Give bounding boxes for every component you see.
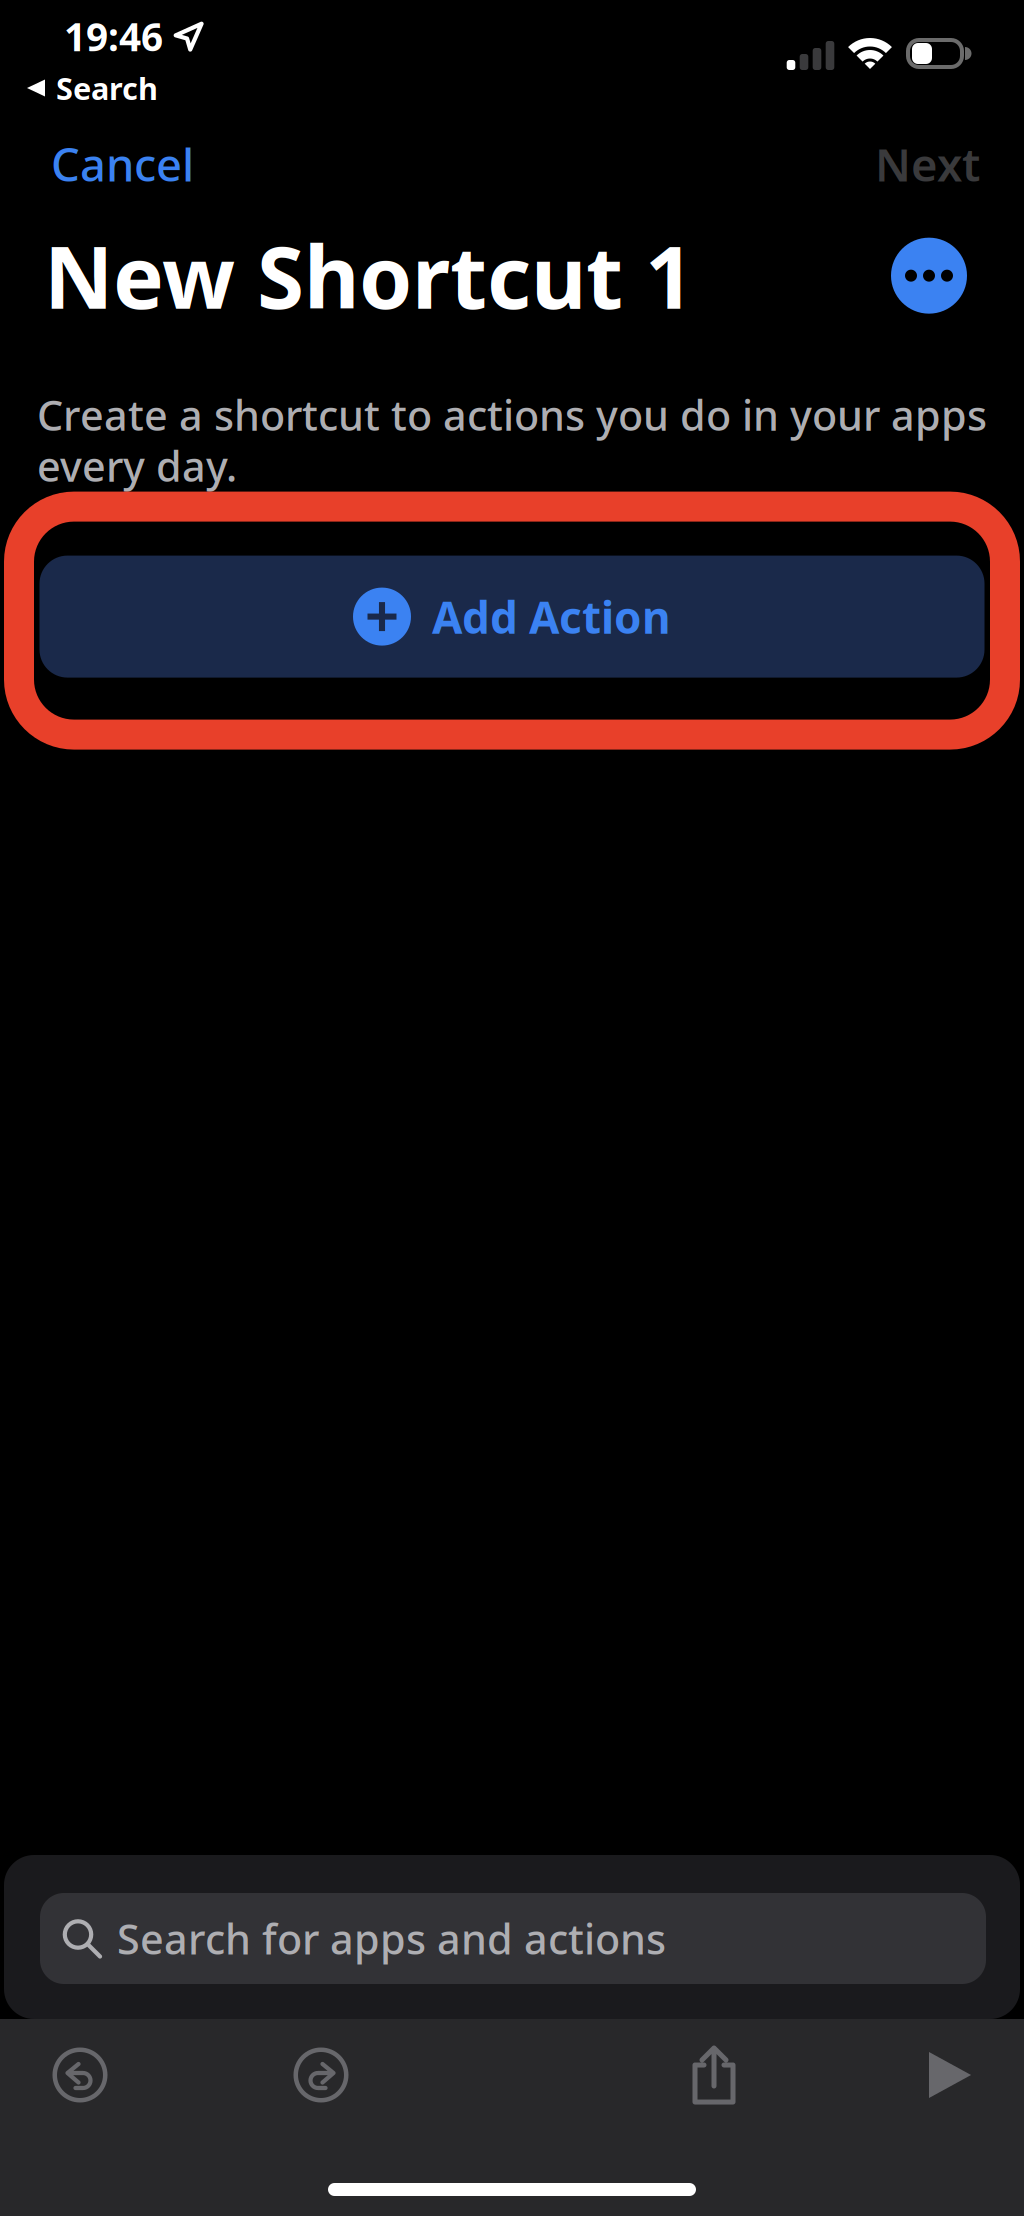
button[interactable]: Next xyxy=(845,131,1024,197)
button[interactable]: Cancel xyxy=(0,131,224,197)
button[interactable]: Search for apps and actions xyxy=(40,1893,986,1984)
button[interactable]: More options xyxy=(891,238,967,314)
button[interactable]: Run shortcut xyxy=(889,2023,1011,2127)
staticText: Search xyxy=(56,68,158,108)
button[interactable]: Share xyxy=(653,2023,775,2127)
button[interactable]: Undo xyxy=(19,2023,141,2127)
staticText: Next xyxy=(875,134,980,194)
staticText: Cancel xyxy=(51,134,194,194)
staticText: Add Action xyxy=(432,587,671,646)
staticText: Create a shortcut to actions you do in y… xyxy=(37,387,987,493)
button[interactable]: Search xyxy=(0,69,176,107)
button[interactable]: Add Action xyxy=(39,556,984,678)
staticText: 19:46 xyxy=(64,11,163,62)
staticText: New Shortcut 1 xyxy=(44,219,694,332)
button[interactable]: Redo xyxy=(260,2023,382,2127)
staticText: Search for apps and actions xyxy=(117,1911,666,1966)
